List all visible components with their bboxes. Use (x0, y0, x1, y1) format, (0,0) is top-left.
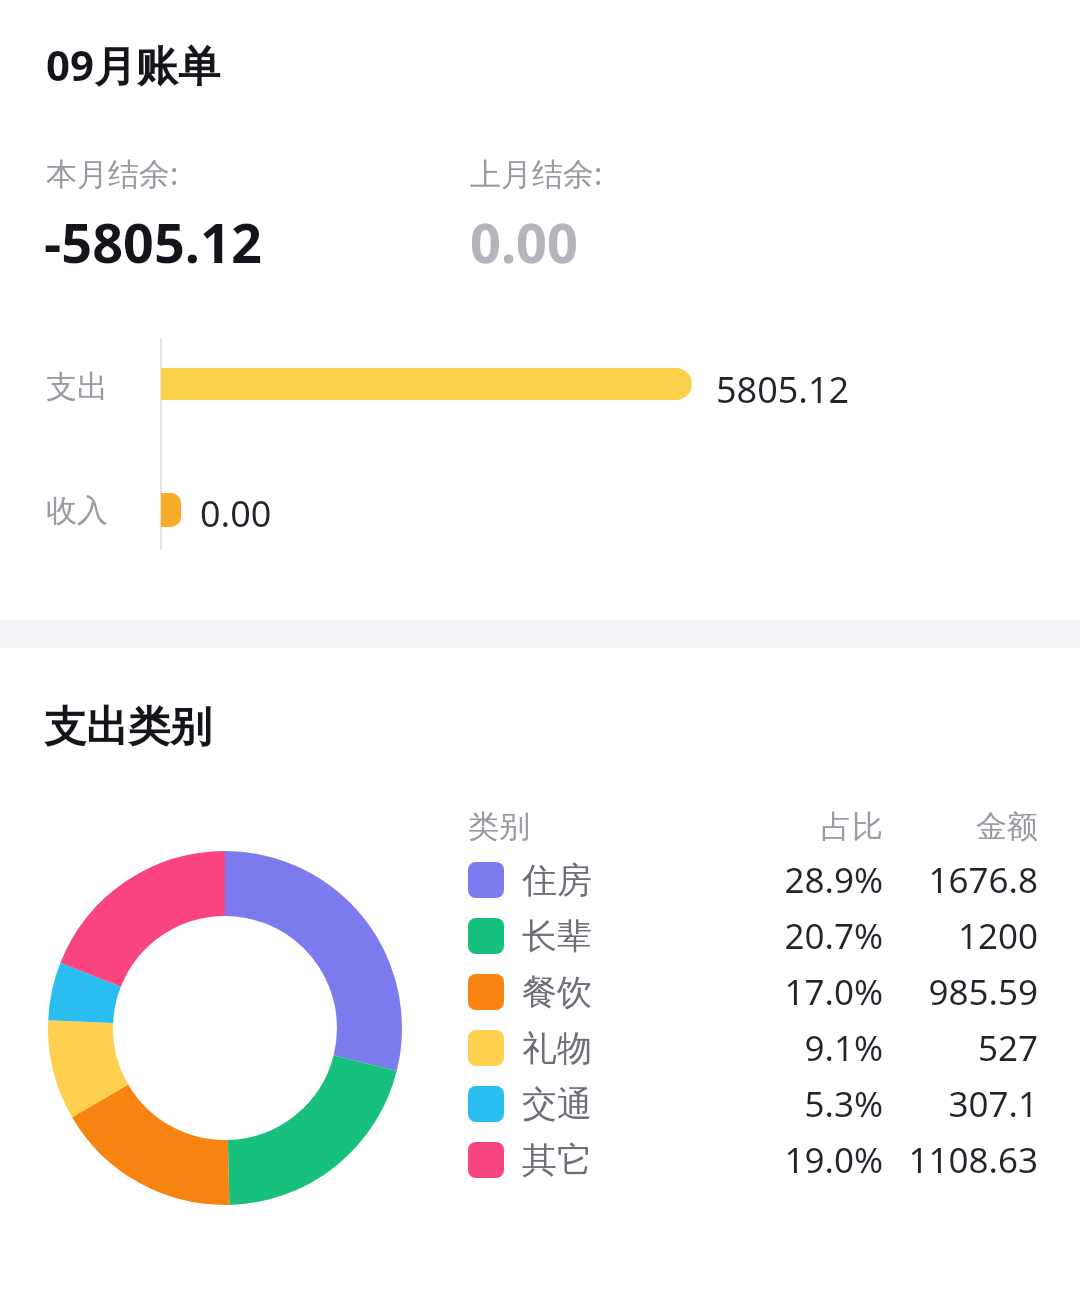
staticText: 1108.63 (883, 1136, 1038, 1184)
staticText: 0.00 (470, 205, 578, 279)
staticText: 28.9% (723, 856, 883, 904)
button[interactable]: 其它 (468, 1132, 1038, 1188)
staticText: 餐饮 (522, 970, 592, 1014)
staticText: 占比 (723, 807, 883, 846)
staticText: 礼物 (522, 1026, 592, 1070)
button[interactable]: 长辈 (468, 908, 1038, 964)
other: 支出类别饼图 (48, 851, 402, 1205)
staticText: 本月结余: (46, 152, 179, 194)
staticText: 09月账单 (46, 36, 221, 93)
staticText: 9.1% (723, 1024, 883, 1072)
button[interactable]: 餐饮 (468, 964, 1038, 1020)
staticText: 527 (883, 1024, 1038, 1072)
staticText: 长辈 (522, 914, 592, 958)
staticText: 5805.12 (716, 365, 850, 414)
staticText: 交通 (522, 1082, 592, 1126)
staticText: 985.59 (883, 968, 1038, 1016)
staticText: 17.0% (723, 968, 883, 1016)
button[interactable] (161, 493, 181, 527)
staticText: -5805.12 (44, 205, 262, 279)
staticText: 5.3% (723, 1080, 883, 1128)
button[interactable]: 住房 (468, 852, 1038, 908)
staticText: 1676.8 (883, 856, 1038, 904)
staticText: 1200 (883, 912, 1038, 960)
staticText: 金额 (883, 807, 1038, 846)
staticText: 上月结余: (470, 152, 603, 194)
staticText: 住房 (522, 858, 592, 902)
staticText: 支出类别 (44, 701, 212, 754)
staticText: 类别 (468, 807, 723, 846)
staticText: 307.1 (883, 1080, 1038, 1128)
button[interactable]: 礼物 (468, 1020, 1038, 1076)
staticText: 0.00 (200, 489, 272, 538)
staticText: 20.7% (723, 912, 883, 960)
button[interactable] (161, 368, 692, 400)
button[interactable]: 交通 (468, 1076, 1038, 1132)
staticText: 19.0% (723, 1136, 883, 1184)
staticText: 支出 (46, 367, 108, 406)
staticText: 收入 (46, 491, 108, 530)
staticText: 其它 (522, 1138, 592, 1182)
